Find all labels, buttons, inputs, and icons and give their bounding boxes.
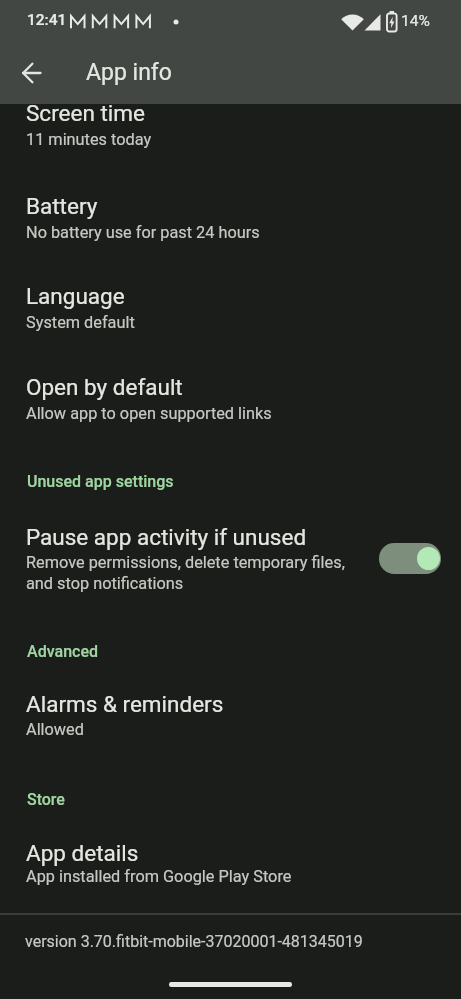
staticText: Allow app to open supported links — [26, 404, 272, 423]
staticText: Unused app settings — [27, 472, 174, 491]
staticText: 11 minutes today — [26, 130, 152, 149]
staticText: 12:41 — [27, 11, 67, 29]
button[interactable]: App details — [0, 826, 461, 913]
staticText: Store — [27, 790, 65, 809]
staticText: App installed from Google Play Store — [26, 867, 292, 886]
staticText: and stop notifications — [26, 574, 184, 593]
staticText: Open by default — [26, 374, 183, 400]
staticText: Alarms & reminders — [26, 691, 224, 717]
button[interactable]: Pause app activity if unused — [0, 509, 461, 620]
staticText: 14% — [401, 12, 430, 30]
staticText: App info — [86, 59, 172, 86]
staticText: Language — [26, 283, 125, 309]
button[interactable] — [379, 543, 441, 574]
staticText: Advanced — [27, 642, 99, 661]
staticText: Screen time — [26, 100, 145, 126]
staticText: Battery — [26, 193, 98, 219]
staticText: System default — [26, 313, 135, 332]
button[interactable]: Screen time — [0, 104, 461, 179]
staticText: No battery use for past 24 hours — [26, 223, 260, 242]
button[interactable]: Language — [0, 269, 461, 360]
staticText: App details — [26, 840, 139, 866]
staticText: Remove permissions, delete temporary fil… — [26, 553, 345, 572]
button[interactable]: Open by default — [0, 360, 461, 446]
button[interactable]: Alarms & reminders — [0, 677, 461, 774]
staticText: Pause app activity if unused — [26, 524, 307, 550]
staticText: Allowed — [26, 720, 84, 739]
button[interactable] — [169, 982, 292, 987]
button[interactable]: Battery — [0, 179, 461, 269]
staticText: version 3.70.fitbit-mobile-37020001-4813… — [25, 932, 363, 951]
button[interactable] — [10, 50, 56, 96]
